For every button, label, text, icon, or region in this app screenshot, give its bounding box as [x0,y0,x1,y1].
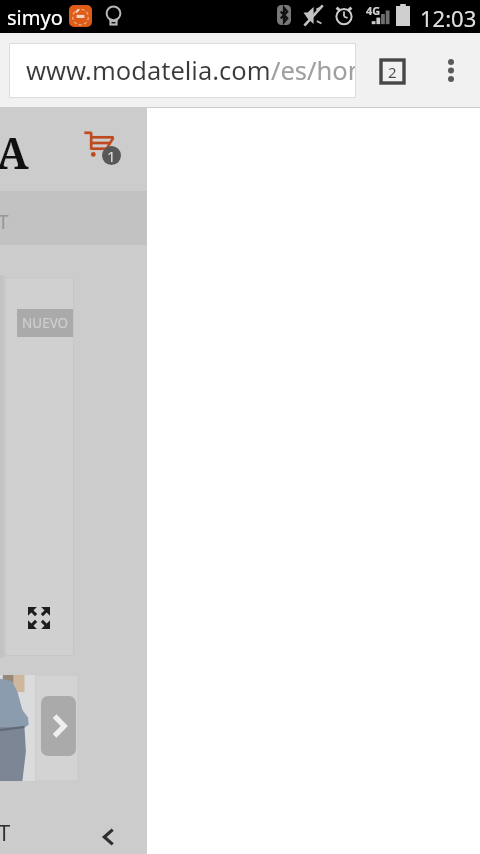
button[interactable]: www.modatelia.com [9,43,356,98]
button[interactable]: Shopping cart [84,131,114,161]
staticText: /es/home [271,53,356,88]
staticText: 2 [388,62,397,82]
button[interactable]: Next image [41,696,76,756]
staticText: T [0,817,11,847]
staticText: T [0,209,9,235]
staticText: NUEVO [22,314,69,332]
staticText: 12:03 [420,3,477,33]
staticText: IA [0,123,29,182]
button[interactable]: Tabs [381,60,404,83]
staticText: simyo [7,4,63,31]
staticText: www.modatelia.com [26,53,271,88]
staticText: 4G [366,3,381,18]
button[interactable]: NUEVO [5,277,74,656]
button[interactable]: Previous [97,825,119,849]
button[interactable]: More options [438,51,463,89]
staticText: 1 [107,146,116,165]
